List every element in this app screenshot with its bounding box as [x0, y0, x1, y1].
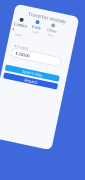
button[interactable]: Send money	[4, 70, 59, 76]
staticText: More	[38, 31, 45, 34]
staticText: $ 250.00	[11, 54, 25, 60]
button[interactable]: Other	[35, 20, 49, 34]
staticText: Bank	[21, 25, 30, 30]
button[interactable]: Bank	[19, 20, 33, 34]
staticText: Amount	[8, 47, 22, 53]
staticText: Transfer money	[15, 12, 54, 20]
staticText: Contacts	[3, 26, 17, 37]
button[interactable]: Contacts	[3, 21, 17, 41]
staticText: Send money	[21, 71, 42, 76]
button[interactable]: Request	[4, 78, 59, 84]
staticText: Request	[25, 79, 38, 84]
staticText: Other	[37, 25, 47, 30]
staticText: Family	[6, 37, 13, 41]
